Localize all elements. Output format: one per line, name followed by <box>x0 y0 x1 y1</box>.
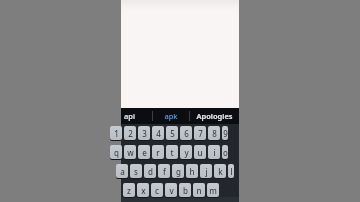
staticText: g <box>176 166 181 177</box>
staticText: e <box>142 147 147 158</box>
staticText: 9 <box>223 128 228 139</box>
button[interactable]: 8 <box>208 126 220 140</box>
button[interactable]: b <box>179 183 191 197</box>
button[interactable]: 3 <box>138 126 150 140</box>
staticText: q <box>114 147 119 158</box>
staticText: o <box>223 147 228 158</box>
staticText: Apologies <box>196 111 233 121</box>
staticText: z <box>127 185 131 196</box>
button[interactable]: i <box>208 145 220 159</box>
button[interactable]: s <box>130 164 142 178</box>
staticText: l <box>230 166 233 177</box>
staticText: v <box>169 185 174 196</box>
button[interactable]: l <box>228 164 234 178</box>
staticText: h <box>189 166 195 177</box>
button[interactable]: 1 <box>110 126 122 140</box>
button[interactable]: Apologies <box>190 108 239 124</box>
button[interactable]: n <box>193 183 205 197</box>
button[interactable]: k <box>214 164 226 178</box>
button[interactable]: 6 <box>180 126 192 140</box>
button[interactable]: m <box>207 183 219 197</box>
button[interactable]: g <box>172 164 184 178</box>
staticText: 2 <box>128 128 133 139</box>
staticText: d <box>148 166 153 177</box>
staticText: k <box>218 166 223 177</box>
button[interactable]: e <box>138 145 150 159</box>
button[interactable]: o <box>222 145 228 159</box>
button[interactable]: q <box>110 145 122 159</box>
staticText: s <box>134 166 138 177</box>
staticText: j <box>205 166 208 177</box>
button[interactable]: v <box>165 183 177 197</box>
button[interactable]: api <box>121 108 152 124</box>
button[interactable]: 4 <box>152 126 164 140</box>
button[interactable]: u <box>194 145 206 159</box>
staticText: 8 <box>212 128 217 139</box>
staticText: 1 <box>114 128 119 139</box>
button[interactable]: f <box>158 164 170 178</box>
staticText: 4 <box>156 128 161 139</box>
staticText: w <box>127 147 134 158</box>
button[interactable]: j <box>200 164 212 178</box>
staticText: m <box>209 185 217 196</box>
button[interactable]: t <box>166 145 178 159</box>
button[interactable]: a <box>116 164 128 178</box>
button[interactable]: c <box>151 183 163 197</box>
button[interactable]: 9 <box>222 126 228 140</box>
staticText: apk <box>164 111 178 121</box>
button[interactable]: 7 <box>194 126 206 140</box>
button[interactable]: d <box>144 164 156 178</box>
staticText: u <box>197 147 203 158</box>
staticText: y <box>184 147 189 158</box>
staticText: n <box>196 185 202 196</box>
staticText: a <box>120 166 125 177</box>
staticText: x <box>141 185 146 196</box>
staticText: api <box>124 111 135 121</box>
staticText: 7 <box>198 128 203 139</box>
staticText: 3 <box>142 128 147 139</box>
staticText: 5 <box>170 128 175 139</box>
button[interactable]: y <box>180 145 192 159</box>
button[interactable]: z <box>123 183 135 197</box>
button[interactable]: x <box>137 183 149 197</box>
button[interactable]: apk <box>153 108 189 124</box>
staticText: 6 <box>184 128 189 139</box>
staticText: b <box>183 185 188 196</box>
button[interactable]: w <box>124 145 136 159</box>
staticText: f <box>163 166 166 177</box>
button[interactable]: 5 <box>166 126 178 140</box>
button[interactable]: r <box>152 145 164 159</box>
button[interactable]: 2 <box>124 126 136 140</box>
staticText: i <box>213 147 216 158</box>
staticText: r <box>156 147 160 158</box>
button[interactable]: h <box>186 164 198 178</box>
staticText: t <box>170 147 174 158</box>
staticText: c <box>155 185 159 196</box>
